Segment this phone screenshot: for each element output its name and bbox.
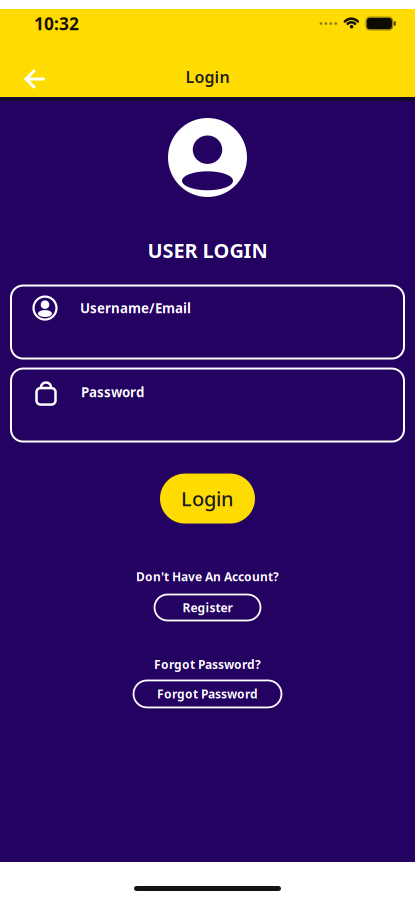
staticText: Login [185, 66, 229, 87]
button[interactable]: Back [0, 60, 59, 97]
button[interactable]: Forgot Password [133, 680, 281, 707]
staticText: Forgot Password [157, 686, 258, 702]
button[interactable]: Username/Email [11, 286, 404, 359]
staticText: Password [81, 383, 144, 401]
staticText: Register [182, 599, 232, 615]
staticText: 10:32 [34, 12, 79, 35]
staticText: Forgot Password? [154, 656, 261, 672]
button[interactable]: Password [11, 369, 404, 442]
staticText: Don't Have An Account? [136, 569, 279, 584]
staticText: USER LOGIN [147, 237, 267, 264]
staticText: Username/Email [80, 299, 191, 317]
button[interactable]: Register [154, 594, 260, 620]
staticText: Login [181, 485, 234, 512]
button[interactable]: Login [160, 474, 255, 524]
